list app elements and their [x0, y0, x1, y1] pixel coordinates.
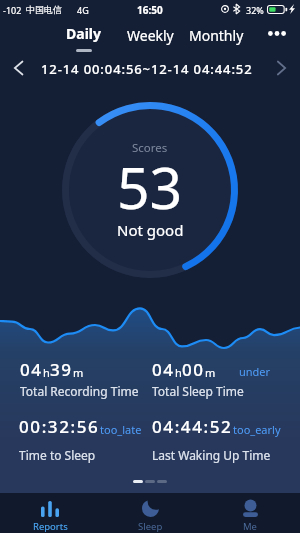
staticText: Last Waking Up Time	[152, 447, 271, 463]
staticText: Me	[243, 520, 257, 533]
button[interactable]: Next	[269, 55, 293, 81]
button[interactable]: Reports	[0, 493, 100, 533]
staticText: Scores	[132, 140, 168, 156]
button[interactable]: Daily	[62, 18, 105, 52]
staticText: Total Recording Time	[20, 383, 139, 399]
staticText: too_early	[233, 422, 281, 437]
staticText: Total Sleep Time	[152, 383, 244, 399]
staticText: Daily	[66, 24, 101, 43]
staticText: 04:44:52	[152, 415, 233, 438]
staticText: Time to Sleep	[19, 447, 96, 463]
button[interactable]: Sleep	[100, 493, 200, 533]
staticText: h	[175, 365, 182, 380]
staticText: 32%	[246, 4, 264, 16]
staticText: 53	[117, 148, 183, 226]
staticText: 12-14 00:04:56~12-14 04:44:52	[41, 60, 253, 78]
staticText: 4G	[77, 4, 89, 16]
staticText: too_late	[100, 422, 142, 437]
staticText: h	[43, 365, 50, 380]
staticText: 中国电信	[26, 4, 62, 15]
staticText: Not good	[117, 220, 184, 240]
staticText: 39	[50, 358, 73, 381]
staticText: 04	[152, 358, 175, 381]
staticText: m	[205, 365, 216, 380]
staticText: 00:32:56	[19, 415, 100, 438]
staticText: Monthly	[189, 26, 244, 45]
staticText: m	[73, 365, 84, 380]
staticText: 16:50	[137, 3, 163, 17]
staticText: Weekly	[127, 26, 174, 45]
staticText: under	[239, 364, 271, 379]
button[interactable]: Previous	[6, 55, 30, 81]
button[interactable]: Me	[200, 493, 300, 533]
button[interactable]: More options	[258, 19, 295, 47]
staticText: 00	[182, 358, 205, 381]
button[interactable]: Monthly	[183, 24, 250, 47]
button[interactable]: Weekly	[121, 24, 180, 47]
staticText: Reports	[33, 520, 68, 533]
staticText: -102	[3, 4, 22, 16]
staticText: 04	[20, 358, 43, 381]
staticText: Sleep	[138, 520, 163, 533]
